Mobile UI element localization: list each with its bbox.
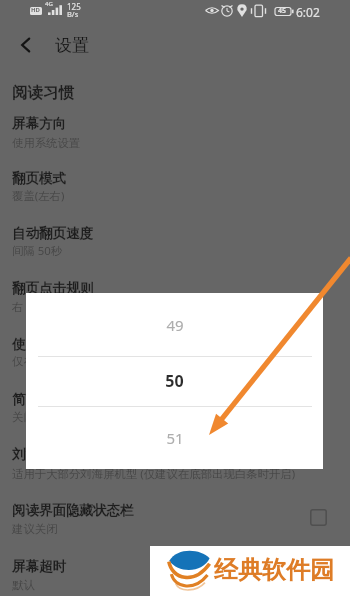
staticText: 简繁体转换	[12, 391, 80, 408]
staticText: 45	[278, 6, 287, 16]
staticText: 刘海屏适配	[12, 446, 80, 463]
staticText: 阅读习惯	[12, 83, 74, 103]
staticText: 使用系统设置	[12, 136, 81, 150]
staticText: 屏幕超时	[12, 558, 66, 575]
staticText: 49	[166, 315, 184, 335]
staticText: B/s	[67, 9, 79, 19]
button[interactable]: 51	[26, 406, 323, 469]
staticText: 建议关闭	[12, 522, 58, 536]
button[interactable]	[0, 495, 350, 539]
staticText: 51	[166, 428, 184, 448]
staticText: 经典软件园	[214, 555, 334, 585]
staticText: 设置	[55, 35, 89, 56]
staticText: 屏幕方向	[12, 115, 66, 132]
staticText: 适用于大部分刘海屏机型 (仅建议在底部出现白条时开启)	[12, 466, 296, 482]
staticText: 仅在阅读界面有效	[12, 354, 104, 368]
button[interactable]	[0, 384, 350, 427]
staticText: 翻页模式	[12, 170, 66, 187]
staticText: 50	[165, 370, 184, 392]
button[interactable]	[0, 163, 350, 205]
staticText: 翻页点击规则	[12, 280, 93, 297]
button[interactable]	[0, 551, 350, 595]
button[interactable]	[0, 218, 350, 260]
button[interactable]	[0, 108, 350, 153]
staticText: 阅读界面隐藏状态栏	[12, 502, 134, 519]
staticText: 125	[67, 1, 81, 12]
button[interactable]: 49	[26, 293, 323, 356]
button[interactable]: Hide status bar toggle	[310, 509, 327, 526]
staticText: 覆盖(左右)	[12, 188, 65, 204]
staticText: 默认	[12, 578, 35, 592]
staticText: 6:02	[296, 4, 320, 20]
button[interactable]: 50	[26, 356, 323, 406]
staticText: 自动翻页速度	[12, 225, 93, 242]
staticText: 使用音量键翻页	[12, 336, 107, 353]
button[interactable]	[0, 439, 350, 483]
button[interactable]	[0, 273, 350, 317]
staticText: 间隔 50秒	[12, 243, 63, 259]
staticText: 右	[12, 300, 24, 314]
button[interactable]: Back	[10, 29, 42, 61]
staticText: 关闭	[12, 410, 35, 424]
button[interactable]	[0, 329, 350, 371]
staticText: 4G	[45, 0, 53, 8]
staticText: HD	[31, 6, 40, 14]
